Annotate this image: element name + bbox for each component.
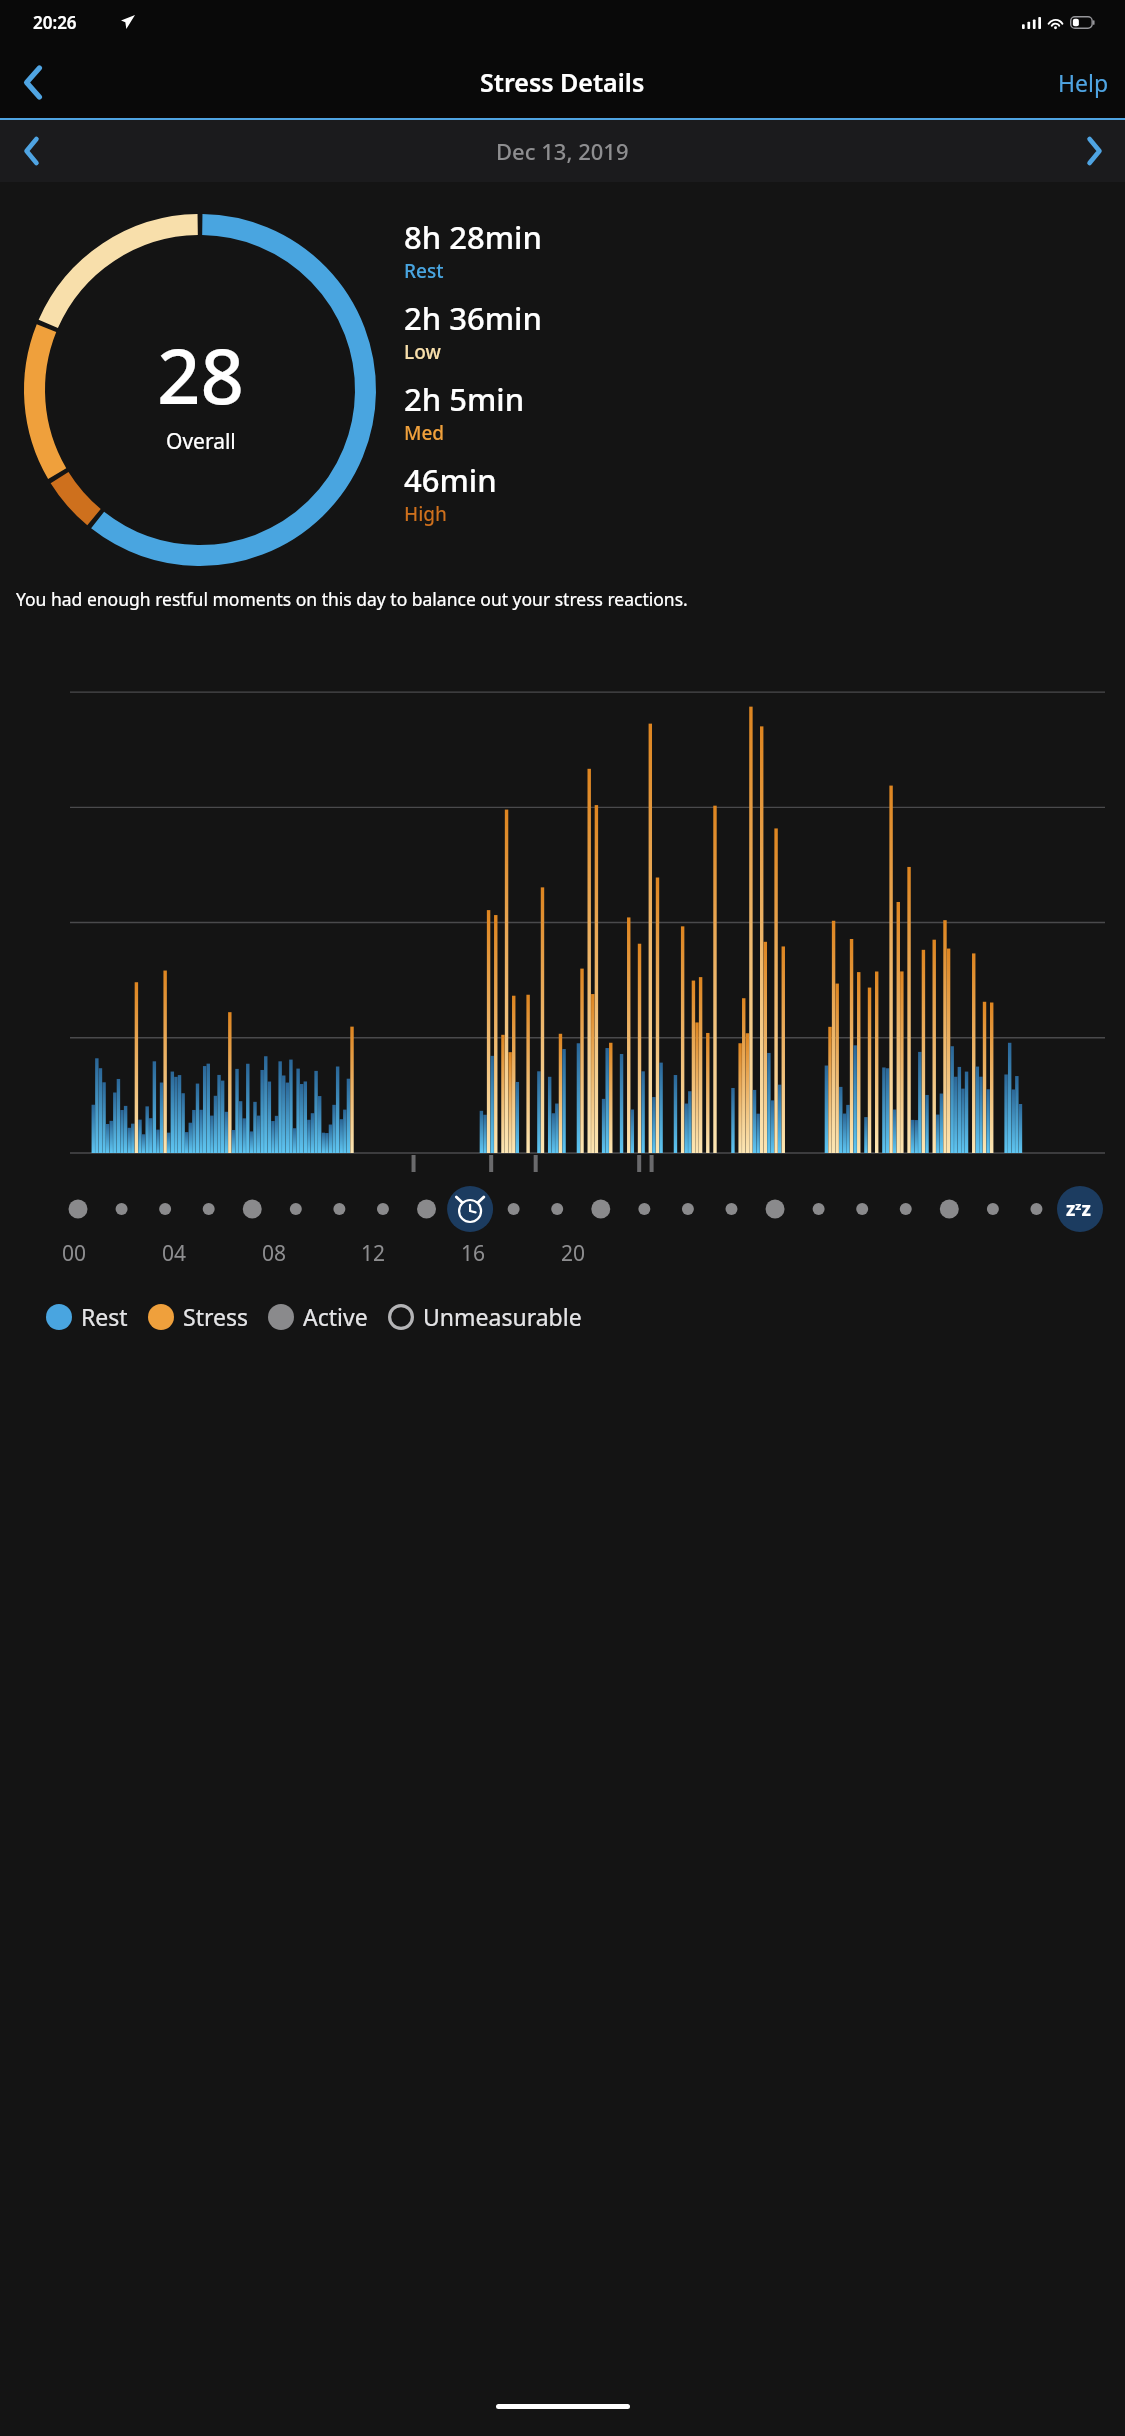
staticText: zᶻz — [1066, 1196, 1091, 1222]
staticText: Active — [303, 1301, 368, 1332]
staticText: 04 — [162, 1239, 187, 1268]
button[interactable]: Unmeasurable — [388, 1301, 582, 1332]
button[interactable]: Previous day — [2, 122, 60, 180]
staticText: 2h 36min — [404, 297, 542, 339]
staticText: Rest — [81, 1301, 128, 1332]
staticText: 46min — [404, 459, 497, 501]
button[interactable]: Rest — [46, 1301, 128, 1332]
button[interactable]: Help — [1042, 53, 1125, 112]
staticText: Dec 13, 2019 — [496, 136, 629, 166]
button[interactable]: Back — [4, 53, 62, 111]
staticText: Rest — [404, 258, 444, 284]
staticText: Med — [404, 420, 445, 446]
staticText: 00 — [62, 1239, 87, 1268]
button[interactable]: Stress — [148, 1301, 248, 1332]
staticText: 8h 28min — [404, 216, 542, 258]
staticText: Unmeasurable — [423, 1301, 582, 1332]
staticText: 16 — [461, 1239, 486, 1268]
button[interactable]: Active — [268, 1301, 368, 1332]
staticText: Overall — [166, 427, 236, 456]
staticText: 08 — [262, 1239, 287, 1268]
staticText: 20 — [561, 1239, 586, 1268]
staticText: 12 — [361, 1239, 386, 1268]
staticText: Help — [1058, 67, 1109, 98]
staticText: Low — [404, 339, 441, 365]
staticText: Stress Details — [480, 65, 645, 99]
staticText: Stress — [183, 1301, 248, 1332]
staticText: High — [404, 501, 448, 527]
staticText: 20:26 — [33, 11, 77, 34]
button[interactable]: Next day — [1065, 122, 1123, 180]
staticText: 2h 5min — [404, 378, 525, 420]
staticText: You had enough restful moments on this d… — [16, 587, 688, 611]
staticText: 28 — [157, 323, 244, 427]
